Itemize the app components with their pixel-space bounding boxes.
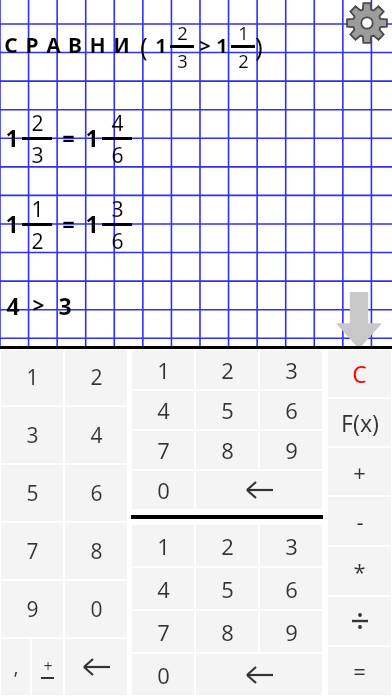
button[interactable]: 0 <box>65 581 127 637</box>
button[interactable]: Settings <box>345 1 389 45</box>
staticText: 1 <box>5 122 19 153</box>
staticText: 2 <box>177 20 188 45</box>
staticText: 1 <box>85 122 99 153</box>
staticText: 6 <box>285 574 298 604</box>
button[interactable]: - <box>328 497 391 545</box>
button[interactable]: 2 <box>196 525 258 566</box>
button[interactable]: 6 <box>260 391 322 429</box>
button[interactable]: 8 <box>196 611 258 652</box>
staticText: 9 <box>285 617 298 647</box>
button[interactable]: Backspace <box>196 654 322 695</box>
staticText: 2 <box>221 531 234 561</box>
staticText: 7 <box>157 617 170 647</box>
staticText: 1 <box>31 194 44 223</box>
button[interactable]: 7 <box>132 431 194 469</box>
staticText: А <box>46 31 61 60</box>
button[interactable]: Backspace <box>65 639 127 695</box>
button[interactable]: 2 <box>196 350 258 389</box>
button[interactable]: 8 <box>196 431 258 469</box>
button[interactable]: 5 <box>196 568 258 609</box>
staticText: 2 <box>31 108 44 137</box>
button[interactable]: 9 <box>260 611 322 652</box>
staticText: - <box>356 506 364 536</box>
staticText: 1 <box>26 363 39 392</box>
staticText: F(x) <box>341 407 379 438</box>
staticText: 6 <box>111 140 124 166</box>
staticText: ( <box>140 28 148 63</box>
button[interactable]: 8 <box>65 523 127 579</box>
staticText: 1 <box>85 208 99 239</box>
staticText: 1 <box>5 208 19 239</box>
button[interactable]: 3 <box>260 350 322 389</box>
staticText: 1 <box>155 32 167 59</box>
button[interactable]: 7 <box>132 611 194 652</box>
button[interactable]: Scroll down <box>336 292 382 349</box>
button[interactable]: 5 <box>1 465 63 521</box>
button[interactable]: C <box>328 350 391 397</box>
button[interactable]: 4 <box>65 407 127 463</box>
staticText: 1 <box>216 32 228 59</box>
button[interactable]: 9 <box>1 581 63 637</box>
staticText: 0 <box>90 595 103 624</box>
staticText: 5 <box>221 395 234 425</box>
button[interactable]: Plus minus <box>32 639 63 695</box>
staticText: 9 <box>285 435 298 465</box>
staticText: 4 <box>6 290 20 321</box>
staticText: C <box>352 358 367 389</box>
button[interactable]: 5 <box>196 391 258 429</box>
button[interactable]: Divide <box>328 597 391 645</box>
staticText: Н <box>89 31 106 60</box>
button[interactable]: * <box>328 547 391 595</box>
staticText: 9 <box>26 595 39 624</box>
button[interactable]: 1 <box>1 350 63 405</box>
staticText: 8 <box>90 537 103 566</box>
staticText: 3 <box>58 290 72 321</box>
staticText: И <box>113 31 130 60</box>
staticText: 3 <box>26 421 39 450</box>
staticText: В <box>68 31 82 60</box>
staticText: 3 <box>31 140 44 166</box>
staticText: С <box>4 31 18 60</box>
button[interactable]: 1 <box>132 525 194 566</box>
staticText: ) <box>255 28 263 63</box>
staticText: * <box>353 556 366 586</box>
staticText: Р <box>25 31 39 60</box>
button[interactable]: + <box>328 448 391 495</box>
staticText: 6 <box>111 226 124 252</box>
staticText: 3 <box>285 355 298 385</box>
button[interactable]: , <box>1 639 30 695</box>
staticText: 7 <box>157 435 170 465</box>
staticText: 0 <box>157 660 170 690</box>
staticText: 8 <box>221 617 234 647</box>
button[interactable]: 3 <box>260 525 322 566</box>
button[interactable]: 3 <box>1 407 63 463</box>
button[interactable]: 6 <box>260 568 322 609</box>
staticText: 2 <box>31 226 44 252</box>
button[interactable]: 0 <box>132 654 194 695</box>
staticText: 1 <box>157 355 170 385</box>
staticText: 4 <box>157 574 170 604</box>
staticText: 2 <box>238 48 249 70</box>
button[interactable]: 0 <box>132 471 194 509</box>
staticText: 1 <box>157 531 170 561</box>
button[interactable]: 4 <box>132 568 194 609</box>
staticText: 4 <box>90 421 103 450</box>
button[interactable]: F(x) <box>328 399 391 446</box>
button[interactable]: 7 <box>1 523 63 579</box>
button[interactable]: 4 <box>132 391 194 429</box>
staticText: 3 <box>285 531 298 561</box>
button[interactable]: Backspace <box>196 471 322 509</box>
staticText: 1 <box>238 20 249 45</box>
staticText: + <box>353 457 366 487</box>
button[interactable]: 6 <box>65 465 127 521</box>
staticText: = <box>62 208 75 238</box>
staticText: = <box>353 656 366 686</box>
button[interactable]: = <box>328 647 391 695</box>
staticText: > <box>32 291 45 320</box>
staticText: 2 <box>221 355 234 385</box>
staticText: 0 <box>157 475 170 505</box>
button[interactable]: 9 <box>260 431 322 469</box>
button[interactable]: 1 <box>132 350 194 389</box>
staticText: 5 <box>221 574 234 604</box>
button[interactable]: 2 <box>65 350 127 405</box>
